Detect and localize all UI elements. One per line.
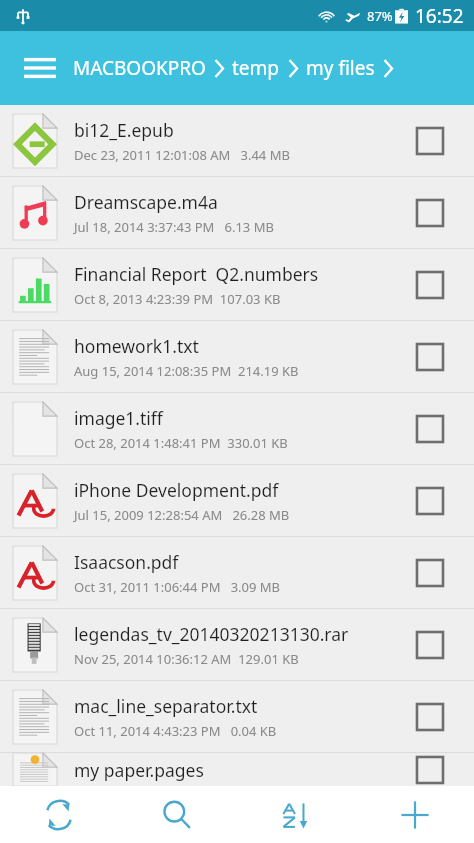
button[interactable]: Select bi12_E.epub: [410, 121, 450, 161]
staticText: Oct 28, 2014 1:48:41 PM 330.01 KB: [74, 434, 288, 452]
button[interactable]: MACBOOKPRO: [70, 49, 209, 87]
button[interactable]: Select homework1.txt: [410, 337, 450, 377]
button[interactable]: Sort: [236, 786, 355, 843]
staticText: Oct 31, 2011 1:06:44 PM 3.09 MB: [74, 578, 281, 596]
staticText: MACBOOKPRO: [73, 55, 206, 81]
staticText: Nov 25, 2014 10:36:12 AM 129.01 KB: [74, 650, 299, 668]
button[interactable]: Search: [118, 786, 236, 843]
staticText: 87%: [367, 7, 393, 25]
staticText: Dec 23, 2011 12:01:08 AM 3.44 MB: [74, 146, 290, 164]
staticText: Jul 18, 2014 3:37:43 PM 6.13 MB: [74, 218, 274, 236]
button[interactable]: Select mac_line_separator.txt: [410, 697, 450, 737]
staticText: my paper.pages: [74, 758, 204, 782]
button[interactable]: Refresh: [0, 786, 118, 843]
button[interactable]: Select Isaacson.pdf: [410, 553, 450, 593]
button[interactable]: Select iPhone Development.pdf: [410, 481, 450, 521]
button[interactable]: Add: [355, 786, 474, 843]
staticText: Dreamscape.m4a: [74, 190, 218, 214]
button[interactable]: Isaacson.pdf: [0, 537, 474, 608]
staticText: Aug 15, 2014 12:08:35 PM 214.19 KB: [74, 362, 299, 380]
staticText: homework1.txt: [74, 334, 199, 358]
staticText: Oct 8, 2013 4:23:39 PM 107.03 KB: [74, 290, 281, 308]
button[interactable]: Financial Report Q2.numbers: [0, 249, 474, 320]
button[interactable]: Select my paper.pages: [410, 753, 450, 786]
button[interactable]: my paper.pages: [0, 753, 474, 786]
button[interactable]: my files: [303, 49, 378, 87]
staticText: Isaacson.pdf: [74, 550, 179, 574]
button[interactable]: homework1.txt: [0, 321, 474, 392]
staticText: image1.tiff: [74, 406, 163, 430]
staticText: 16:52: [415, 3, 464, 29]
button[interactable]: Select image1.tiff: [410, 409, 450, 449]
staticText: Jul 15, 2009 12:28:54 AM 26.28 MB: [74, 506, 290, 524]
button[interactable]: Menu: [18, 46, 62, 90]
staticText: mac_line_separator.txt: [74, 694, 258, 718]
button[interactable]: mac_line_separator.txt: [0, 681, 474, 752]
staticText: my files: [306, 55, 375, 81]
button[interactable]: Dreamscape.m4a: [0, 177, 474, 248]
button[interactable]: image1.tiff: [0, 393, 474, 464]
button[interactable]: Select Financial Report Q2.numbers: [410, 265, 450, 305]
staticText: Financial Report Q2.numbers: [74, 262, 319, 286]
staticText: temp: [232, 55, 280, 81]
button[interactable]: bi12_E.epub: [0, 105, 474, 176]
button[interactable]: Select Dreamscape.m4a: [410, 193, 450, 233]
button[interactable]: iPhone Development.pdf: [0, 465, 474, 536]
staticText: Oct 11, 2014 4:43:23 PM 0.04 KB: [74, 722, 277, 740]
button[interactable]: legendas_tv_20140320213130.rar: [0, 609, 474, 680]
staticText: legendas_tv_20140320213130.rar: [74, 622, 349, 646]
staticText: iPhone Development.pdf: [74, 478, 279, 502]
button[interactable]: Select legendas_tv_20140320213130.rar: [410, 625, 450, 665]
staticText: bi12_E.epub: [74, 118, 174, 142]
button[interactable]: temp: [229, 49, 283, 87]
